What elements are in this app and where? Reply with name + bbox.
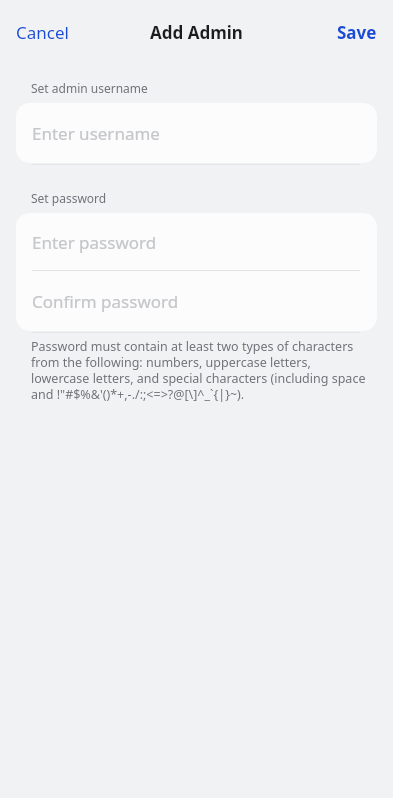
button[interactable]: Enter username [16, 103, 377, 163]
button[interactable]: Enter password [16, 213, 377, 271]
staticText: Password must contain at least two types… [31, 338, 369, 403]
button[interactable]: Cancel [10, 13, 75, 52]
button[interactable]: Confirm password [16, 271, 377, 331]
staticText: Set admin username [31, 80, 148, 96]
staticText: Cancel [16, 21, 69, 44]
button[interactable]: Save [331, 13, 383, 52]
staticText: Enter password [32, 231, 157, 254]
staticText: Set password [31, 190, 107, 206]
staticText: Enter username [32, 122, 160, 145]
staticText: Confirm password [32, 290, 179, 313]
staticText: Save [337, 21, 377, 44]
staticText: Add Admin [150, 21, 243, 44]
